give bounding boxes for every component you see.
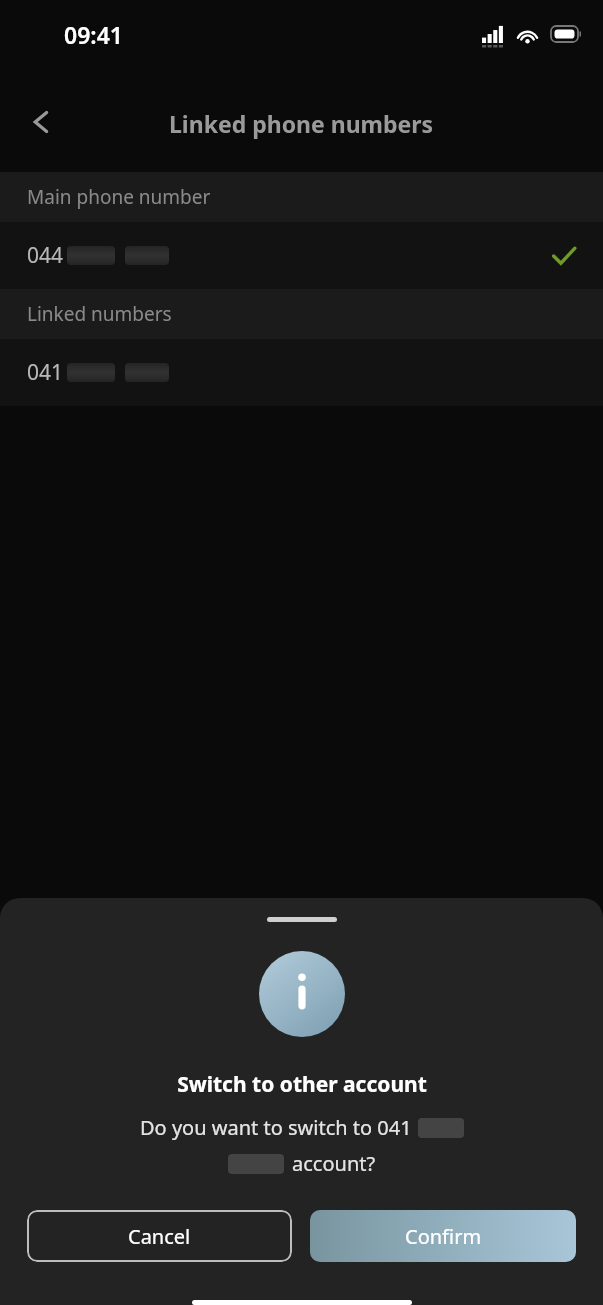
button[interactable]: Confirm — [310, 1210, 576, 1262]
staticText: Confirm — [405, 1223, 482, 1250]
staticText: Linked phone numbers — [169, 108, 434, 139]
staticText: Switch to other account — [177, 1070, 427, 1099]
button[interactable]: Back — [18, 96, 70, 148]
staticText: 09:41 — [64, 19, 123, 50]
staticText: Linked numbers — [27, 301, 172, 327]
button[interactable]: 041 — [0, 339, 603, 406]
staticText: Main phone number — [27, 184, 211, 210]
staticText: Cancel — [128, 1223, 191, 1250]
staticText: 041 — [27, 358, 64, 387]
staticText: 044 — [27, 241, 64, 270]
button[interactable]: 044 — [0, 222, 603, 289]
staticText: Do you want to switch to 041 — [140, 1114, 412, 1141]
staticText: account? — [292, 1150, 376, 1177]
button[interactable]: Cancel — [27, 1210, 292, 1262]
